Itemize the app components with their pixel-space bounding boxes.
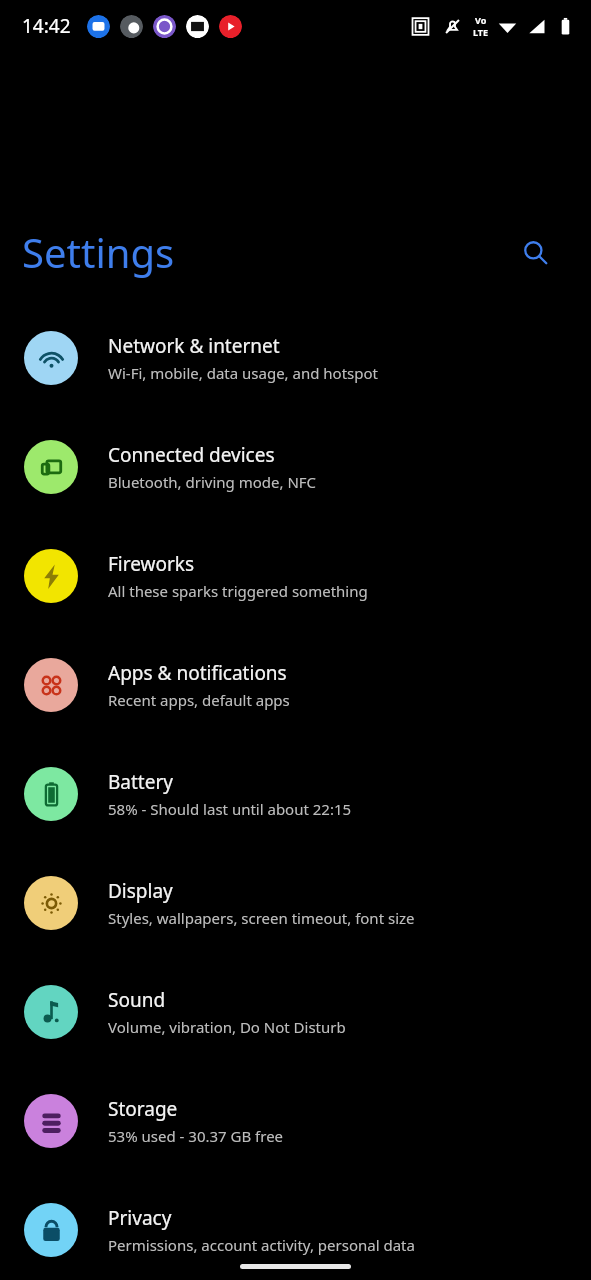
button[interactable]: Search settings xyxy=(513,230,557,274)
button[interactable]: Display xyxy=(0,876,591,930)
staticText: Apps & notifications xyxy=(108,660,287,686)
button[interactable]: Privacy xyxy=(0,1203,591,1257)
staticText: Volume, vibration, Do Not Disturb xyxy=(108,1017,346,1037)
staticText: Sound xyxy=(108,987,166,1013)
button[interactable]: Sound xyxy=(0,985,591,1039)
staticText: Display xyxy=(108,878,173,904)
staticText: Permissions, account activity, personal … xyxy=(108,1235,415,1255)
staticText: Vo xyxy=(475,14,487,26)
staticText: Fireworks xyxy=(108,551,195,577)
button[interactable]: Connected devices xyxy=(0,440,591,494)
staticText: Battery xyxy=(108,769,173,795)
staticText: 58% - Should last until about 22:15 xyxy=(108,799,352,819)
staticText: Settings xyxy=(22,225,175,279)
staticText: LTE xyxy=(473,26,489,38)
staticText: All these sparks triggered something xyxy=(108,581,368,601)
button[interactable]: Fireworks xyxy=(0,549,591,603)
staticText: Styles, wallpapers, screen timeout, font… xyxy=(108,908,415,928)
button[interactable]: Battery xyxy=(0,767,591,821)
button[interactable]: Apps & notifications xyxy=(0,658,591,712)
staticText: Bluetooth, driving mode, NFC xyxy=(108,472,317,492)
staticText: Storage xyxy=(108,1096,178,1122)
staticText: Network & internet xyxy=(108,333,280,359)
staticText: Wi-Fi, mobile, data usage, and hotspot xyxy=(108,363,378,383)
staticText: Connected devices xyxy=(108,442,275,468)
button[interactable]: Storage xyxy=(0,1094,591,1148)
staticText: Privacy xyxy=(108,1205,172,1231)
staticText: 14:42 xyxy=(22,13,71,39)
staticText: 53% used - 30.37 GB free xyxy=(108,1126,284,1146)
button[interactable]: Network & internet xyxy=(0,331,591,385)
staticText: Recent apps, default apps xyxy=(108,690,290,710)
